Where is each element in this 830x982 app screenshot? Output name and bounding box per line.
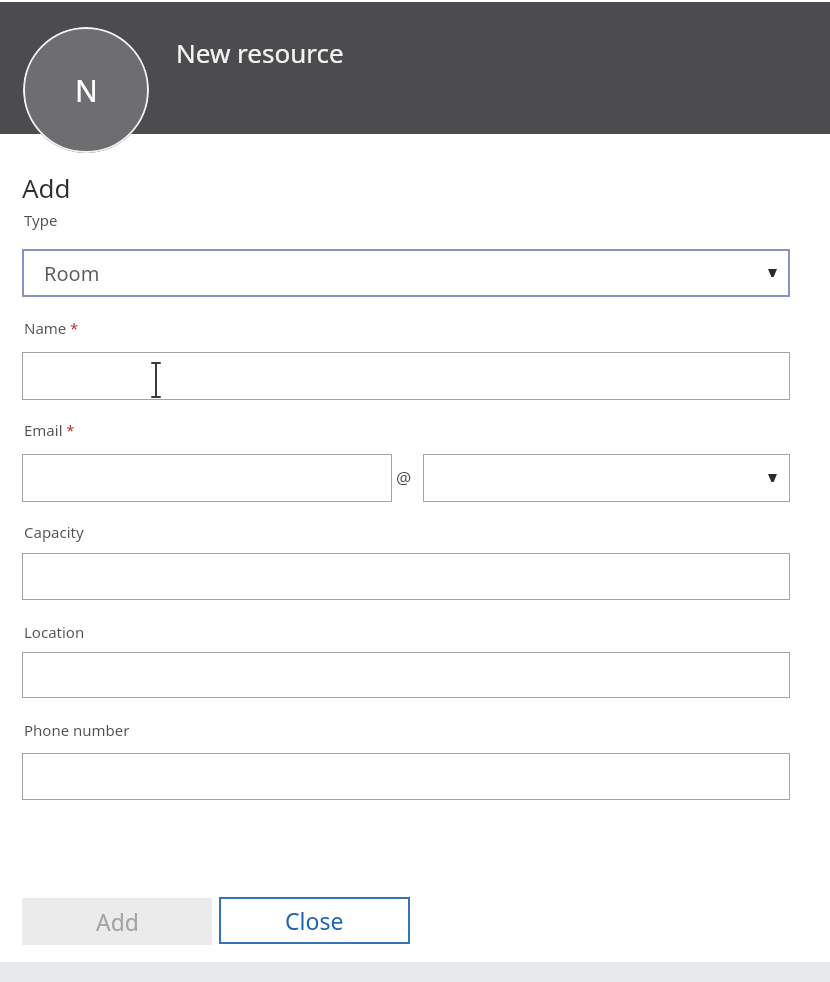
button[interactable]: Room bbox=[22, 249, 790, 297]
staticText: New resource bbox=[176, 35, 344, 70]
button[interactable] bbox=[423, 454, 790, 502]
button[interactable]: Add bbox=[22, 898, 212, 945]
staticText: Capacity bbox=[24, 522, 84, 542]
staticText: Close bbox=[285, 905, 344, 936]
button[interactable] bbox=[22, 352, 790, 400]
button[interactable]: N bbox=[23, 27, 149, 153]
staticText: Email * bbox=[24, 420, 75, 440]
staticText: Location bbox=[24, 622, 85, 642]
staticText: Phone number bbox=[24, 720, 130, 740]
button[interactable] bbox=[22, 652, 790, 698]
button[interactable] bbox=[22, 753, 790, 800]
button[interactable] bbox=[22, 553, 790, 600]
button[interactable]: Close bbox=[219, 897, 410, 944]
staticText: Room bbox=[44, 260, 100, 287]
staticText: Add bbox=[96, 906, 139, 937]
staticText: Type bbox=[24, 210, 58, 230]
staticText: N bbox=[75, 70, 98, 111]
staticText: @ bbox=[396, 466, 412, 489]
staticText: Add bbox=[22, 170, 71, 205]
button[interactable] bbox=[22, 454, 392, 502]
staticText: Name * bbox=[24, 318, 79, 338]
